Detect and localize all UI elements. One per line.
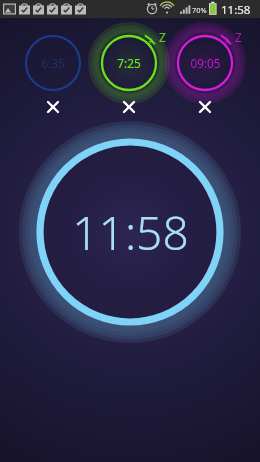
button[interactable]: 09:05: [178, 36, 232, 90]
button[interactable]: Dismiss alarm: [42, 96, 64, 118]
button[interactable]: 11:58: [40, 142, 220, 322]
staticText: Z: [235, 29, 242, 45]
staticText: 7:25: [117, 55, 141, 71]
button[interactable]: 6:35: [26, 36, 80, 90]
staticText: 70%: [192, 5, 207, 15]
button[interactable]: Dismiss alarm: [194, 96, 216, 118]
button[interactable]: Dismiss alarm: [118, 96, 140, 118]
staticText: z: [224, 37, 228, 48]
staticText: 11:58: [221, 2, 251, 18]
staticText: Z: [159, 29, 166, 45]
button[interactable]: 7:25: [102, 36, 156, 90]
staticText: 09:05: [190, 55, 221, 71]
staticText: 6:35: [41, 55, 65, 71]
staticText: z: [148, 37, 152, 48]
staticText: 11:58: [72, 201, 189, 264]
